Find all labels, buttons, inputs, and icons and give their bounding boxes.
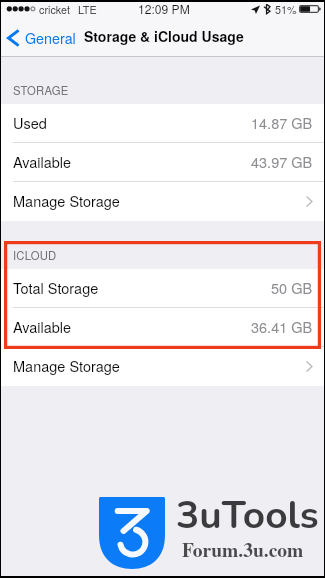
staticText: ICLOUD: [13, 247, 57, 263]
staticText: Total Storage: [13, 277, 99, 298]
button[interactable]: Available: [1, 143, 324, 182]
staticText: LTE: [78, 2, 97, 17]
staticText: 3uTools: [176, 489, 319, 542]
staticText: General: [25, 28, 76, 48]
staticText: Storage & iCloud Usage: [84, 26, 244, 46]
button[interactable]: Total Storage: [1, 269, 324, 308]
staticText: Forum.3u.com: [182, 535, 304, 563]
staticText: Available: [13, 151, 72, 172]
staticText: 12:09 PM: [138, 0, 190, 17]
button[interactable]: Back to General: [3, 21, 83, 56]
staticText: 50 GB: [271, 277, 313, 298]
button[interactable]: Manage Storage: [1, 347, 324, 386]
button[interactable]: Used: [1, 104, 324, 143]
staticText: Manage Storage: [13, 355, 120, 376]
staticText: STORAGE: [13, 82, 69, 98]
button[interactable]: Manage Storage: [1, 182, 324, 221]
staticText: Manage Storage: [13, 190, 120, 211]
staticText: 14.87 GB: [251, 112, 313, 133]
staticText: 51%: [275, 2, 297, 17]
staticText: Available: [13, 316, 72, 337]
staticText: Used: [13, 112, 47, 133]
button[interactable]: Available: [1, 308, 324, 347]
staticText: cricket: [39, 2, 70, 17]
staticText: 43.97 GB: [251, 151, 313, 172]
staticText: 36.41 GB: [251, 316, 313, 337]
